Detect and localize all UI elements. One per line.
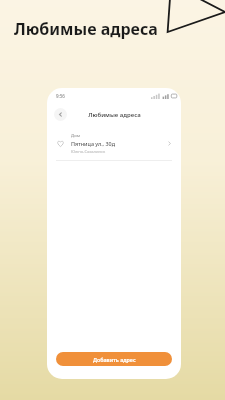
staticText: 9:56 xyxy=(56,93,65,99)
button[interactable]: Дом xyxy=(47,128,181,160)
staticText: Любимые адреса xyxy=(88,111,141,119)
staticText: Дом xyxy=(71,132,80,138)
staticText: Добавить адрес xyxy=(93,356,136,363)
staticText: Пятница ул., 30д xyxy=(71,140,115,147)
staticText: Южно-Сахалинск xyxy=(71,149,106,155)
staticText: Любимые адреса xyxy=(14,18,158,40)
button[interactable]: Добавить адрес xyxy=(56,352,172,366)
button[interactable]: Назад xyxy=(54,108,67,121)
